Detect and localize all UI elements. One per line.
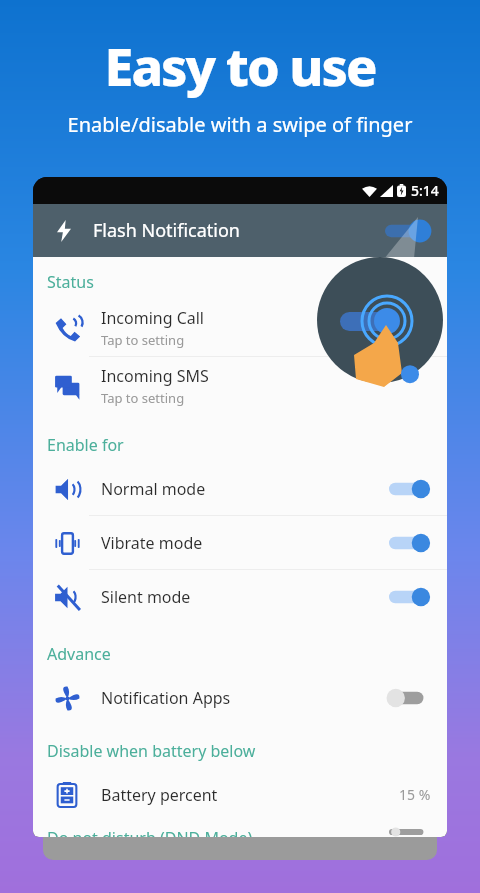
staticText: Easy to use	[0, 30, 480, 101]
staticText: 5:14	[411, 181, 439, 200]
staticText: Battery percent	[101, 784, 399, 806]
staticText: Do not disturb (DND Mode)	[47, 827, 387, 837]
button[interactable]: Normal mode	[33, 462, 447, 516]
button[interactable]: Vibrate mode	[33, 516, 447, 570]
staticText: Advance	[47, 643, 111, 665]
button[interactable]: On	[387, 474, 433, 504]
staticText: Disable when battery below	[47, 740, 256, 762]
staticText: Enable/disable with a swipe of finger	[0, 111, 480, 138]
button[interactable]: Battery percent	[33, 768, 447, 821]
staticText: Vibrate mode	[101, 532, 387, 554]
staticText: Enable for	[47, 434, 124, 456]
staticText: Flash Notification	[93, 218, 240, 243]
button[interactable]: Off	[387, 827, 433, 837]
button[interactable]: Do not disturb (DND Mode)	[33, 827, 447, 837]
button[interactable]: Flash	[47, 214, 81, 248]
staticText: Incoming Call	[101, 307, 204, 329]
staticText: Status	[47, 271, 94, 293]
staticText: Notification Apps	[101, 687, 387, 709]
button[interactable]: Master switch	[381, 214, 435, 248]
button[interactable]: On	[387, 582, 433, 612]
button[interactable]: On	[387, 528, 433, 558]
staticText: Tap to setting	[101, 389, 185, 407]
staticText: 15 %	[399, 785, 431, 804]
staticText: Normal mode	[101, 478, 387, 500]
staticText: Incoming SMS	[101, 365, 209, 387]
button[interactable]: Notification Apps	[33, 671, 447, 724]
button[interactable]: Incoming SMS	[33, 357, 447, 414]
button[interactable]: Silent mode	[33, 570, 447, 623]
staticText: Tap to setting	[101, 331, 185, 349]
staticText: Silent mode	[101, 586, 387, 608]
button[interactable]: Off	[387, 683, 433, 713]
button[interactable]: Incoming Call	[33, 299, 447, 357]
